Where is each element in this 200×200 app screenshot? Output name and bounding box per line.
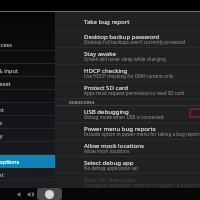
staticText: Location access (0, 41, 12, 49)
staticText: Apps must request permission to read SD … (84, 90, 185, 96)
button[interactable]: Location access (0, 38, 55, 51)
staticText: Backup & reset (0, 80, 11, 88)
staticText: Take bug report (84, 17, 130, 25)
staticText: About tablet (0, 171, 4, 179)
button[interactable]: Assistant (37, 188, 62, 200)
button[interactable]: Security (0, 51, 55, 64)
button[interactable]: Language & input (0, 64, 55, 77)
button[interactable]: HDCP checking (55, 65, 200, 82)
staticText: Desktop backup password (84, 32, 160, 40)
button[interactable]: Accessibility (0, 129, 55, 142)
staticText: Include option in power menu for taking … (84, 131, 200, 137)
staticText: Date & time (0, 119, 3, 127)
staticText: No debug application set (84, 165, 139, 171)
staticText: Debugged application waits for debugger … (84, 182, 200, 188)
staticText: Accessibility (0, 132, 3, 140)
button[interactable]: About tablet (0, 168, 55, 181)
staticText: Screen will never sleep while charging (84, 56, 166, 62)
staticText: Allow mock locations (84, 141, 144, 149)
button[interactable]: Wait for debugger (55, 174, 200, 190)
button[interactable]: Take bug report (55, 14, 200, 31)
staticText: Wait for debugger (84, 175, 137, 183)
staticText: Stay awake (84, 49, 116, 57)
button[interactable]: USB debugging (55, 106, 200, 123)
staticText: USB debugging (84, 107, 129, 115)
button[interactable]: Volume down (16, 190, 25, 199)
button[interactable]: Stay awake (55, 48, 200, 65)
button[interactable]: Power menu bug reports (55, 123, 200, 140)
staticText: DEBUGGING (69, 100, 95, 106)
button[interactable]: Allow mock locations (55, 140, 200, 157)
staticText: Developer options (0, 158, 20, 166)
button[interactable]: Desktop backup password (55, 31, 200, 48)
staticText: Allow mock locations (84, 148, 130, 154)
staticText: Desktop full backups aren't currently pr… (84, 39, 186, 45)
button[interactable]: Protect SD card (55, 82, 200, 99)
staticText: Debug mode when USB is connected (84, 114, 164, 120)
button[interactable]: Developer options (0, 155, 55, 168)
staticText: Power menu bug reports (84, 124, 156, 132)
staticText: Protect SD card (84, 83, 128, 91)
button[interactable]: Volume up (26, 190, 35, 199)
button[interactable]: Add account (0, 103, 55, 116)
button[interactable]: Printing (0, 142, 55, 155)
staticText: Language & input (0, 67, 18, 75)
staticText: Use HDCP checking for DRM content only (84, 73, 174, 79)
staticText: Add account (0, 106, 4, 114)
staticText: Select debug app (84, 158, 134, 166)
button[interactable]: Select debug app (55, 157, 200, 174)
button[interactable]: ACCOUNTS (0, 90, 55, 103)
button[interactable]: Backup & reset (0, 77, 55, 90)
staticText: HDCP checking (84, 66, 128, 74)
button[interactable]: Date & time (0, 116, 55, 129)
